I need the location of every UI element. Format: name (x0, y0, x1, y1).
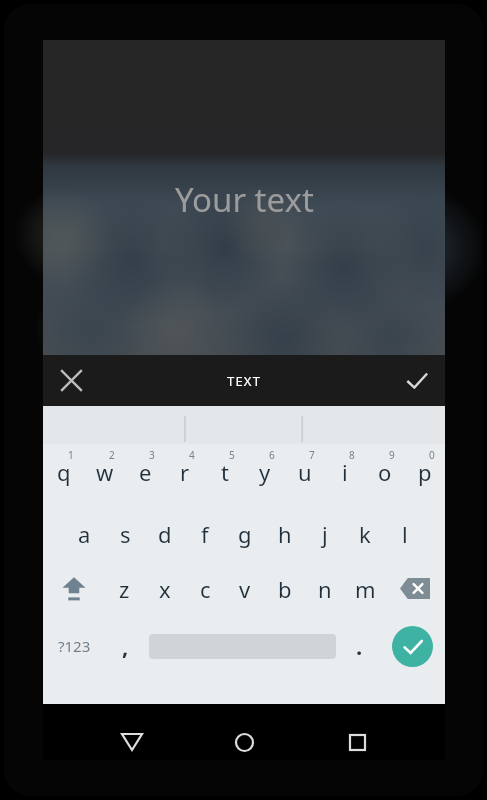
staticText: 0 (429, 448, 435, 462)
button[interactable]: z (104, 561, 145, 616)
button[interactable]: l (385, 506, 425, 561)
staticText: m (355, 574, 376, 604)
button[interactable]: 2 (84, 444, 125, 506)
button[interactable]: n (305, 561, 345, 616)
button[interactable]: Home (220, 718, 268, 766)
button[interactable]: d (145, 506, 185, 561)
staticText: w (96, 457, 114, 487)
staticText: 3 (149, 448, 155, 462)
staticText: g (238, 519, 252, 549)
button[interactable]: Shift (43, 561, 104, 616)
button[interactable]: k (345, 506, 385, 561)
staticText: s (120, 519, 131, 549)
staticText: u (298, 457, 312, 487)
button[interactable]: Recents (333, 718, 381, 766)
button[interactable]: 5 (205, 444, 245, 506)
staticText: 7 (309, 448, 315, 462)
staticText: , (122, 631, 129, 661)
button[interactable]: 3 (125, 444, 165, 506)
staticText: 5 (229, 448, 235, 462)
button[interactable]: g (225, 506, 265, 561)
staticText: 2 (109, 448, 115, 462)
button[interactable]: 7 (285, 444, 325, 506)
staticText: a (78, 519, 91, 549)
button[interactable]: . (340, 616, 379, 676)
staticText: y (259, 457, 271, 487)
button[interactable]: f (185, 506, 225, 561)
staticText: 9 (389, 448, 395, 462)
button[interactable]: Cancel (43, 355, 99, 406)
button[interactable]: Enter (379, 616, 445, 676)
staticText: p (418, 457, 432, 487)
button[interactable]: c (185, 561, 225, 616)
button[interactable]: x (145, 561, 185, 616)
button[interactable]: b (265, 561, 305, 616)
button[interactable]: h (265, 506, 305, 561)
staticText: TEXT (227, 372, 262, 390)
staticText: e (139, 457, 152, 487)
staticText: 8 (349, 448, 355, 462)
button[interactable]: Back (108, 718, 156, 766)
staticText: h (278, 519, 292, 549)
button[interactable]: m (345, 561, 385, 616)
staticText: n (318, 574, 332, 604)
staticText: f (201, 519, 209, 549)
staticText: k (359, 519, 371, 549)
staticText: 1 (68, 448, 74, 462)
staticText: v (239, 574, 251, 604)
button[interactable]: 9 (365, 444, 405, 506)
button[interactable]: j (305, 506, 345, 561)
staticText: ?123 (58, 636, 91, 656)
button[interactable]: 1 (43, 444, 84, 506)
staticText: x (159, 574, 171, 604)
staticText: b (278, 574, 292, 604)
button[interactable]: v (225, 561, 265, 616)
button[interactable]: , (106, 616, 145, 676)
button[interactable]: a (64, 506, 105, 561)
button[interactable]: 6 (245, 444, 285, 506)
button[interactable]: 0 (405, 444, 445, 506)
staticText: i (342, 457, 348, 487)
staticText: j (322, 519, 328, 549)
button[interactable]: 8 (325, 444, 365, 506)
button[interactable]: ?123 (43, 616, 106, 676)
staticText: d (158, 519, 172, 549)
staticText: . (356, 631, 363, 661)
staticText: Your text (175, 177, 314, 222)
button[interactable]: Done (389, 355, 445, 406)
button[interactable]: 4 (165, 444, 205, 506)
staticText: o (378, 457, 392, 487)
staticText: z (119, 574, 130, 604)
button[interactable]: Backspace (385, 561, 445, 616)
staticText: l (402, 519, 408, 549)
button[interactable]: s (105, 506, 145, 561)
button[interactable]: Space (145, 616, 340, 676)
staticText: r (180, 457, 190, 487)
staticText: 6 (269, 448, 275, 462)
staticText: t (221, 457, 229, 487)
staticText: q (57, 457, 71, 487)
staticText: 4 (189, 448, 195, 462)
staticText: c (200, 574, 211, 604)
